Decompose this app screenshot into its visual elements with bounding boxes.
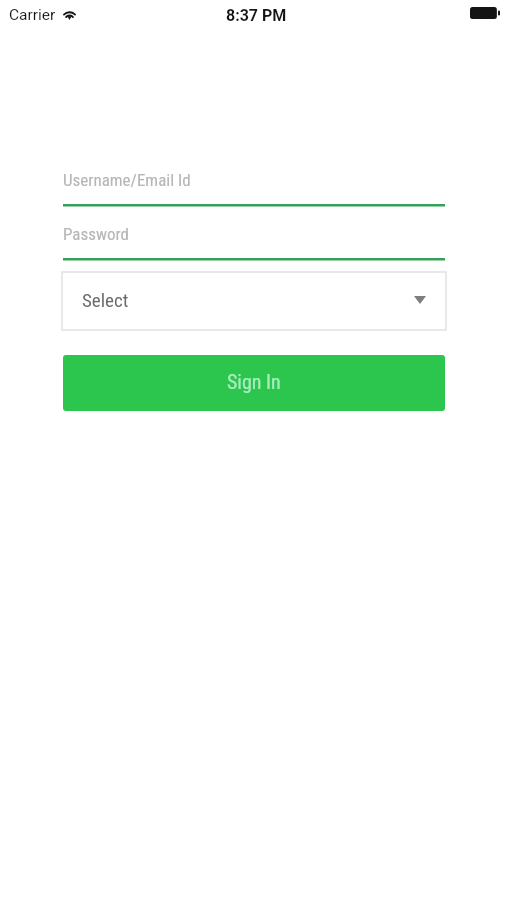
other: Open dropdown bbox=[414, 296, 426, 304]
staticText: Sign In bbox=[227, 370, 281, 393]
staticText: Password bbox=[63, 224, 130, 244]
staticText: Select bbox=[82, 289, 129, 311]
staticText: Carrier bbox=[9, 6, 56, 24]
button[interactable]: Username/Email Id bbox=[63, 163, 445, 206]
button[interactable]: Select bbox=[62, 272, 446, 330]
other: Wi-Fi bbox=[61, 6, 78, 20]
other: Battery full bbox=[470, 7, 500, 19]
button[interactable]: Password bbox=[63, 217, 445, 260]
staticText: 8:37 PM bbox=[226, 6, 287, 25]
button[interactable]: Sign In bbox=[63, 355, 445, 411]
staticText: Username/Email Id bbox=[63, 170, 191, 190]
